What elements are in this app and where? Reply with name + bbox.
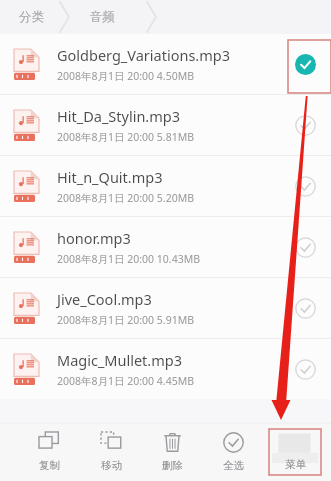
staticText: 2008年8月1日 20:00 5.91MB	[57, 313, 195, 327]
staticText: 删除	[162, 459, 183, 472]
button[interactable]: Select	[279, 156, 331, 216]
button[interactable]: 移动	[80, 423, 142, 481]
button[interactable]: Hit_Da_Stylin.mp3	[0, 95, 331, 155]
button[interactable]: Select	[279, 278, 331, 338]
button[interactable]: 音频	[62, 0, 142, 34]
staticText: 2008年8月1日 20:00 5.20MB	[57, 191, 195, 205]
staticText: Goldberg_Variations.mp3	[57, 45, 230, 65]
staticText: 分类	[19, 9, 44, 25]
staticText: 全选	[223, 459, 244, 472]
button[interactable]: 复制	[18, 423, 80, 481]
staticText: 复制	[39, 459, 60, 472]
button[interactable]: 分类	[0, 0, 62, 34]
staticText: 移动	[101, 459, 122, 472]
staticText: 2008年8月1日 20:00 4.45MB	[57, 374, 195, 388]
button[interactable]: Selected	[279, 34, 331, 94]
staticText: Jive_Cool.mp3	[57, 289, 152, 309]
staticText: Magic_Mullet.mp3	[57, 350, 183, 370]
staticText: 2008年8月1日 20:00 4.50MB	[57, 69, 195, 83]
staticText: honor.mp3	[57, 228, 131, 248]
button[interactable]: Select	[279, 217, 331, 277]
staticText: 2008年8月1日 20:00 5.81MB	[57, 130, 195, 144]
button[interactable]: Magic_Mullet.mp3	[0, 339, 331, 399]
button[interactable]: Goldberg_Variations.mp3	[0, 34, 331, 94]
staticText: 2008年8月1日 20:00 10.43MB	[57, 252, 201, 266]
button[interactable]: Jive_Cool.mp3	[0, 278, 331, 338]
button[interactable]: 删除	[142, 423, 203, 481]
button[interactable]: 全选	[203, 423, 264, 481]
button[interactable]: Select	[279, 95, 331, 155]
staticText: Hit_Da_Stylin.mp3	[57, 106, 181, 126]
staticText: 音频	[90, 9, 115, 25]
staticText: Hit_n_Quit.mp3	[57, 167, 163, 187]
button[interactable]: 菜单	[264, 423, 325, 481]
button[interactable]: Select	[279, 339, 331, 399]
button[interactable]: honor.mp3	[0, 217, 331, 277]
button[interactable]: Hit_n_Quit.mp3	[0, 156, 331, 216]
staticText: 菜单	[285, 458, 306, 471]
